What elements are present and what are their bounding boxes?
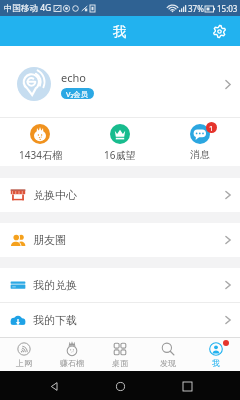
staticText: 兑换中心 (33, 188, 77, 202)
staticText: 桌面 (112, 358, 128, 368)
staticText: 1434石榴 (19, 148, 62, 162)
button[interactable]: 16威望 (80, 118, 160, 162)
button[interactable]: 发现 (144, 338, 192, 368)
staticText: 赚石榴 (60, 358, 84, 368)
staticText: 中国移动 4G (4, 2, 52, 14)
staticText: 消息 (190, 148, 210, 161)
staticText: 我 (212, 358, 220, 368)
button[interactable]: Back (41, 373, 67, 399)
button[interactable]: 上网 (0, 338, 48, 368)
button[interactable]: 1 (160, 118, 240, 161)
button[interactable]: 我的下载 (0, 303, 240, 337)
staticText: 我 (113, 23, 127, 40)
button[interactable]: echo (0, 46, 240, 117)
button[interactable]: 1434石榴 (0, 118, 80, 162)
staticText: 我的下载 (33, 313, 77, 327)
button[interactable]: 我 (192, 338, 240, 368)
button[interactable]: 兑换中心 (0, 178, 240, 212)
staticText: echo (61, 70, 86, 85)
staticText: 朋友圈 (33, 233, 66, 247)
button[interactable]: 赚石榴 (48, 338, 96, 368)
staticText: 15:03 (217, 3, 238, 14)
staticText: 我的兑换 (33, 278, 77, 292)
staticText: 上网 (16, 358, 32, 368)
staticText: 1 (209, 123, 214, 133)
button[interactable]: Recents (174, 373, 200, 399)
staticText: 发现 (160, 358, 176, 368)
button[interactable]: Home (107, 373, 133, 399)
staticText: V₃会员 (66, 89, 89, 99)
button[interactable]: Settings (211, 23, 227, 39)
staticText: 16威望 (104, 148, 136, 162)
staticText: 37% (188, 3, 204, 14)
button[interactable]: 我的兑换 (0, 268, 240, 302)
button[interactable]: 桌面 (96, 338, 144, 368)
button[interactable]: 朋友圈 (0, 223, 240, 257)
